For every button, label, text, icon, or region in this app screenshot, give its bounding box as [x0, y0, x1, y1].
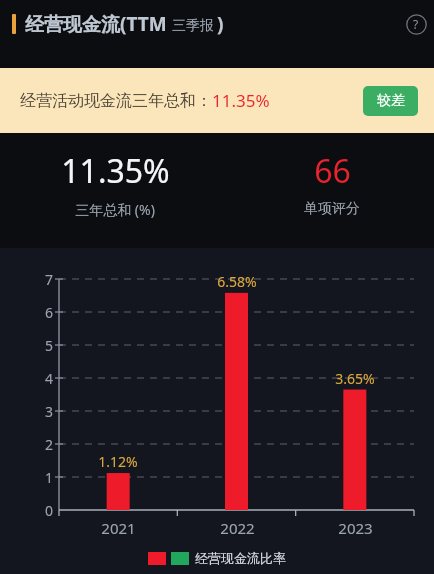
staticText: 三季报 — [172, 17, 214, 35]
button[interactable]: 66 — [230, 133, 434, 218]
staticText: 较差 — [377, 92, 405, 110]
staticText: ) — [217, 11, 224, 37]
staticText: 0 — [45, 501, 54, 520]
button[interactable]: Help — [401, 9, 431, 39]
staticText: 11.35% — [212, 89, 270, 112]
staticText: 三年总和 (%) — [75, 200, 155, 219]
staticText: 6 — [45, 303, 54, 322]
button[interactable]: 2021 — [83, 518, 153, 538]
staticText: 单项评分 — [304, 200, 360, 218]
staticText: 1.12% — [98, 452, 138, 471]
staticText: 经营现金流(TTM — [25, 11, 167, 37]
staticText: 2022 — [220, 518, 255, 538]
staticText: 1 — [45, 468, 54, 487]
staticText: 经营活动现金流三年总和： — [20, 91, 212, 111]
staticText: 2021 — [101, 518, 136, 538]
staticText: 2023 — [338, 518, 373, 538]
staticText: 5 — [45, 336, 54, 355]
staticText: 经营现金流比率 — [195, 550, 286, 566]
staticText: 3 — [45, 402, 54, 421]
staticText: 2 — [45, 435, 54, 454]
staticText: 4 — [45, 369, 54, 388]
staticText: 66 — [314, 149, 351, 193]
button[interactable]: 经营现金流比率 — [148, 550, 286, 566]
button[interactable]: 11.35% — [0, 133, 230, 219]
staticText: 7 — [45, 270, 54, 289]
button[interactable]: 经营活动现金流三年总和： — [0, 68, 434, 133]
staticText: 11.35% — [61, 149, 170, 193]
staticText: 3.65% — [335, 369, 375, 388]
button[interactable]: 2022 — [202, 518, 272, 538]
button[interactable]: 较差 — [363, 86, 418, 116]
staticText: ? — [413, 16, 419, 32]
button[interactable]: 2023 — [320, 518, 390, 538]
staticText: 6.58% — [217, 272, 257, 291]
